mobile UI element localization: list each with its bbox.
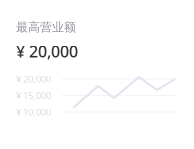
- staticText: ¥ 20,000: [16, 41, 78, 62]
- staticText: ¥ 10,000: [16, 106, 51, 118]
- staticText: ¥ 15,000: [16, 89, 51, 102]
- staticText: 最高营业额: [16, 20, 76, 35]
- staticText: ¥ 20,000: [16, 73, 51, 85]
